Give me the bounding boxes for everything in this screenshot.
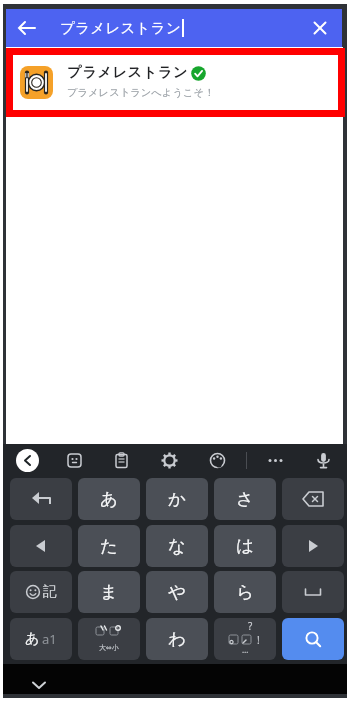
staticText: や bbox=[168, 581, 186, 603]
button[interactable]: か bbox=[146, 478, 208, 520]
button[interactable]: 大⇔小 bbox=[78, 618, 140, 660]
button[interactable] bbox=[282, 571, 344, 613]
staticText: 記 bbox=[43, 583, 57, 601]
button[interactable] bbox=[306, 14, 334, 42]
button[interactable]: は bbox=[214, 525, 276, 567]
staticText: あ bbox=[100, 488, 118, 510]
staticText: プラメレストランへようこそ！ bbox=[67, 86, 215, 99]
button[interactable] bbox=[64, 450, 85, 471]
button[interactable]: わ bbox=[146, 618, 208, 660]
button[interactable]: ? bbox=[214, 618, 276, 660]
button[interactable]: あ bbox=[78, 478, 140, 520]
staticText: プラメレストラン bbox=[67, 64, 189, 82]
button[interactable] bbox=[10, 478, 72, 520]
button[interactable]: さ bbox=[214, 478, 276, 520]
button[interactable] bbox=[313, 450, 334, 471]
button[interactable] bbox=[282, 525, 344, 567]
button[interactable] bbox=[26, 676, 52, 694]
button[interactable] bbox=[265, 450, 286, 471]
button[interactable]: ら bbox=[214, 571, 276, 613]
staticText: は bbox=[236, 535, 254, 557]
staticText: プラメレストラン bbox=[60, 19, 182, 37]
button[interactable] bbox=[282, 478, 344, 520]
staticText: か bbox=[168, 488, 186, 510]
staticText: た bbox=[100, 535, 118, 557]
staticText: ま bbox=[100, 581, 118, 603]
button[interactable] bbox=[282, 618, 344, 660]
button[interactable] bbox=[10, 525, 72, 567]
staticText: … bbox=[242, 644, 249, 655]
staticText: ら bbox=[236, 581, 254, 603]
button[interactable] bbox=[111, 450, 132, 471]
button[interactable]: プラメレストラン bbox=[56, 9, 186, 47]
button[interactable] bbox=[6, 48, 345, 117]
staticText: a1 bbox=[42, 630, 57, 648]
button[interactable]: な bbox=[146, 525, 208, 567]
button[interactable]: ま bbox=[78, 571, 140, 613]
button[interactable] bbox=[207, 450, 228, 471]
button[interactable]: 記 bbox=[10, 571, 72, 613]
button[interactable] bbox=[159, 450, 180, 471]
button[interactable]: あ bbox=[10, 618, 72, 660]
button[interactable]: た bbox=[78, 525, 140, 567]
staticText: ? bbox=[248, 619, 253, 633]
staticText: な bbox=[168, 535, 186, 557]
button[interactable] bbox=[12, 14, 42, 42]
button[interactable] bbox=[16, 449, 39, 472]
staticText: わ bbox=[168, 628, 186, 650]
staticText: 大⇔小 bbox=[99, 643, 119, 652]
staticText: ! bbox=[257, 633, 260, 647]
button[interactable]: や bbox=[146, 571, 208, 613]
staticText: さ bbox=[236, 488, 254, 510]
staticText: あ bbox=[25, 630, 40, 648]
